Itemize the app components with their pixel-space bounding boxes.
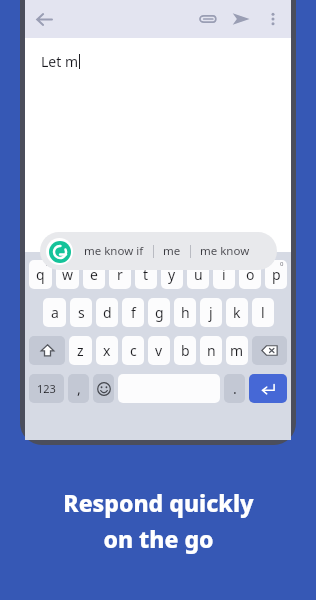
staticText: . — [233, 379, 237, 398]
staticText: t — [143, 265, 149, 284]
staticText: h — [181, 303, 190, 322]
staticText: d — [103, 303, 112, 322]
staticText: me — [163, 243, 181, 259]
button[interactable]: b — [174, 336, 196, 365]
staticText: e — [90, 265, 98, 284]
staticText: l — [261, 303, 265, 322]
staticText: w — [62, 265, 74, 284]
staticText: on the go — [103, 523, 214, 554]
staticText: me know — [200, 243, 250, 259]
button[interactable]: q — [29, 260, 52, 289]
button[interactable]: p — [265, 260, 287, 289]
staticText: Let m — [41, 52, 79, 71]
button[interactable]: m — [226, 336, 248, 365]
staticText: s — [78, 303, 85, 322]
staticText: 1 — [45, 260, 49, 268]
staticText: p — [272, 265, 281, 284]
staticText: u — [194, 265, 203, 284]
button[interactable]: Back — [25, 0, 63, 38]
button[interactable]: v — [148, 336, 170, 365]
button[interactable]: Send — [224, 2, 258, 36]
staticText: n — [207, 341, 216, 360]
button[interactable]: g — [148, 298, 170, 327]
button[interactable]: c — [122, 336, 144, 365]
staticText: 0 — [280, 260, 284, 268]
button[interactable]: t — [135, 260, 157, 289]
button[interactable]: Shift — [29, 336, 65, 365]
button[interactable]: u — [187, 260, 209, 289]
staticText: b — [181, 341, 190, 360]
staticText: c — [130, 341, 137, 360]
button[interactable]: y — [161, 260, 183, 289]
button[interactable]: k — [226, 298, 248, 327]
button[interactable]: n — [200, 336, 222, 365]
staticText: y — [168, 265, 176, 284]
staticText: q — [36, 265, 45, 284]
button[interactable]: i — [213, 260, 235, 289]
button[interactable]: d — [96, 298, 118, 327]
staticText: z — [77, 341, 84, 360]
staticText: f — [131, 303, 136, 322]
button[interactable]: a — [43, 298, 66, 327]
button[interactable]: r — [109, 260, 131, 289]
staticText: g — [155, 303, 164, 322]
button[interactable]: Backspace — [252, 336, 287, 365]
staticText: a — [51, 303, 59, 322]
staticText: v — [155, 341, 163, 360]
button[interactable]: z — [69, 336, 92, 365]
staticText: , — [77, 379, 81, 398]
button[interactable]: Attach file — [190, 2, 224, 36]
button[interactable]: s — [70, 298, 92, 327]
button[interactable]: x — [96, 336, 118, 365]
button[interactable]: w — [56, 260, 79, 289]
button[interactable]: More options — [258, 4, 288, 34]
staticText: Respond quickly — [63, 487, 254, 518]
button[interactable]: o — [239, 260, 261, 289]
button[interactable]: Enter — [249, 374, 287, 403]
staticText: k — [233, 303, 241, 322]
button[interactable]: me — [161, 243, 183, 259]
button[interactable]: h — [174, 298, 196, 327]
button[interactable]: Grammarly — [46, 238, 73, 265]
button[interactable]: me know if — [82, 243, 146, 259]
button[interactable]: me know — [198, 243, 252, 259]
button[interactable]: e — [83, 260, 105, 289]
button[interactable]: l — [252, 298, 274, 327]
button[interactable]: Comma — [68, 374, 89, 403]
button[interactable]: Numbers — [29, 374, 64, 403]
staticText: j — [209, 303, 213, 322]
button[interactable]: f — [122, 298, 144, 327]
staticText: o — [246, 265, 255, 284]
staticText: me know if — [84, 243, 144, 259]
staticText: x — [103, 341, 111, 360]
staticText: 123 — [37, 381, 56, 396]
staticText: i — [222, 265, 226, 284]
staticText: r — [117, 265, 123, 284]
button[interactable]: j — [200, 298, 222, 327]
staticText: m — [230, 341, 244, 360]
button[interactable]: Period — [224, 374, 245, 403]
button[interactable]: Emoji — [93, 374, 114, 403]
